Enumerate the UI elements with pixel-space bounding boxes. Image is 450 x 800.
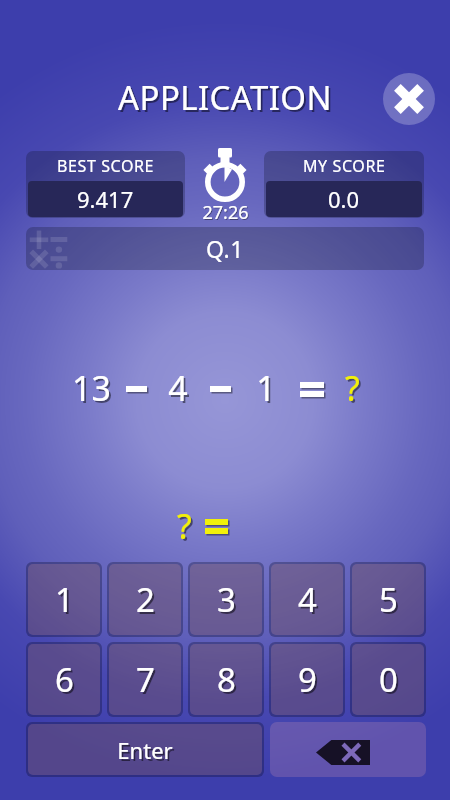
staticText: 7 — [138, 659, 157, 704]
staticText: Enter — [117, 735, 173, 765]
staticText: 1 — [57, 579, 76, 624]
button[interactable]: 8 — [190, 644, 262, 715]
staticText: 1 — [258, 367, 278, 413]
staticText: 3 — [217, 577, 236, 622]
staticText: 4 — [168, 365, 188, 411]
button[interactable]: 7 — [109, 644, 181, 715]
staticText: ? — [347, 367, 362, 413]
staticText: 3 — [219, 579, 238, 624]
staticText: 27:26 — [203, 201, 250, 226]
staticText: ? — [177, 503, 192, 549]
staticText: Enter — [119, 737, 175, 767]
button[interactable]: MY SCORE — [264, 151, 424, 218]
staticText: 9 — [298, 657, 317, 702]
button[interactable]: 1 — [28, 564, 100, 635]
staticText: 27:26 — [202, 200, 249, 225]
staticText: 4 — [298, 577, 317, 622]
staticText: 9.417 — [77, 184, 134, 214]
staticText: BEST SCORE — [57, 155, 155, 177]
staticText: 9 — [300, 659, 319, 704]
staticText: 4 — [170, 367, 190, 413]
button[interactable]: 6 — [28, 644, 100, 715]
button[interactable]: Backspace — [270, 722, 426, 777]
button[interactable]: 0 — [352, 644, 424, 715]
staticText: 0 — [379, 657, 398, 702]
button[interactable]: Close — [383, 73, 435, 125]
staticText: APPLICATION — [120, 77, 334, 122]
staticText: 2 — [138, 579, 157, 624]
button[interactable]: 9 — [271, 644, 343, 715]
staticText: 6 — [57, 659, 76, 704]
button[interactable]: Enter — [28, 724, 262, 775]
staticText: 8 — [219, 659, 238, 704]
staticText: 0 — [381, 659, 400, 704]
button[interactable]: 4 — [271, 564, 343, 635]
staticText: 8 — [217, 657, 236, 702]
staticText: 4 — [300, 579, 319, 624]
staticText: 1 — [55, 577, 74, 622]
staticText: 5 — [379, 577, 398, 622]
staticText: 5 — [381, 579, 400, 624]
button[interactable]: 5 — [352, 564, 424, 635]
staticText: 13 — [72, 365, 111, 411]
staticText: ? — [179, 505, 194, 551]
button[interactable]: 2 — [109, 564, 181, 635]
button[interactable]: Q.1 — [26, 227, 424, 270]
button[interactable]: BEST SCORE — [26, 151, 185, 218]
staticText: 6 — [55, 657, 74, 702]
staticText: 7 — [136, 657, 155, 702]
staticText: 1 — [256, 365, 276, 411]
staticText: 2 — [136, 577, 155, 622]
button[interactable]: 3 — [190, 564, 262, 635]
staticText: MY SCORE — [303, 155, 386, 177]
staticText: 13 — [74, 367, 113, 413]
staticText: APPLICATION — [118, 75, 332, 120]
staticText: Q.1 — [206, 233, 244, 264]
staticText: 0.0 — [328, 184, 360, 214]
staticText: ? — [345, 365, 360, 411]
